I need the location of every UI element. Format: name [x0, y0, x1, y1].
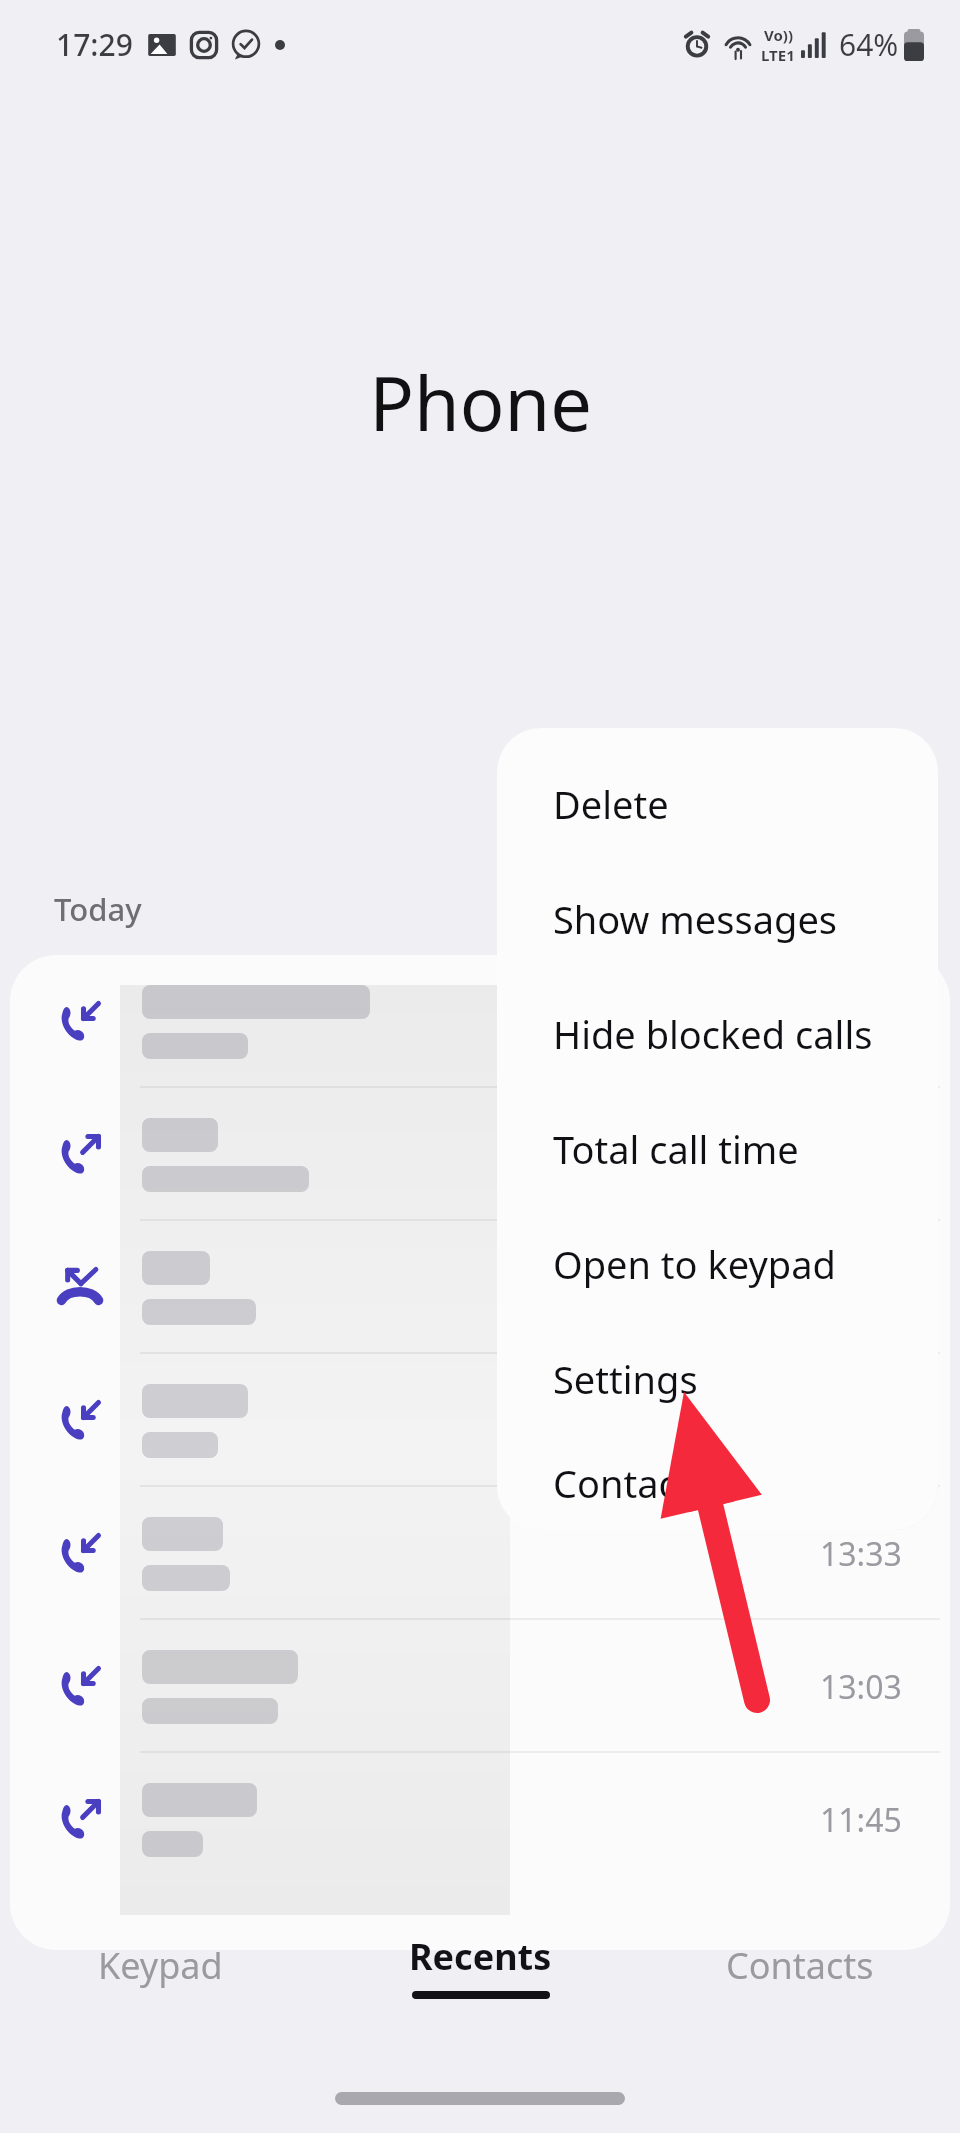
button[interactable]: Contacts: [640, 1905, 960, 2025]
staticText: Hide blocked calls: [553, 1008, 873, 1060]
staticText: Keypad: [98, 1941, 223, 1990]
button[interactable]: [10, 1221, 950, 1354]
staticText: Total call time: [553, 1123, 799, 1175]
staticText: Contact us: [553, 1457, 743, 1509]
staticText: 17:29: [56, 24, 133, 65]
staticText: Delete: [553, 778, 669, 830]
button[interactable]: Show messages: [497, 861, 938, 976]
button[interactable]: Contact us: [497, 1436, 938, 1530]
button[interactable]: [10, 1354, 950, 1487]
button[interactable]: 11:45: [10, 1753, 950, 1886]
staticText: Show messages: [553, 893, 838, 945]
staticText: Today: [54, 888, 142, 930]
button[interactable]: 13:33: [10, 1487, 950, 1620]
staticText: Vo)): [764, 25, 793, 45]
staticText: Settings: [553, 1353, 698, 1405]
staticText: Contacts: [726, 1941, 874, 1990]
staticText: 13:03: [820, 1665, 902, 1709]
button[interactable]: Hide blocked calls: [497, 976, 938, 1091]
staticText: Recents: [409, 1932, 552, 1981]
button[interactable]: 13:03: [10, 1620, 950, 1753]
button[interactable]: Total call time: [497, 1091, 938, 1206]
button[interactable]: [10, 1088, 950, 1221]
button[interactable]: Keypad: [0, 1905, 320, 2025]
button[interactable]: Recents: [320, 1905, 640, 2025]
button[interactable]: Settings: [497, 1321, 938, 1436]
staticText: LTE1: [761, 45, 795, 65]
button[interactable]: Delete: [497, 746, 938, 861]
staticText: Open to keypad: [553, 1238, 836, 1290]
button[interactable]: Open to keypad: [497, 1206, 938, 1321]
staticText: 13:33: [820, 1532, 902, 1576]
button[interactable]: [10, 955, 950, 1088]
staticText: 11:45: [820, 1798, 902, 1842]
staticText: 64%: [839, 24, 899, 65]
staticText: Phone: [369, 352, 592, 453]
